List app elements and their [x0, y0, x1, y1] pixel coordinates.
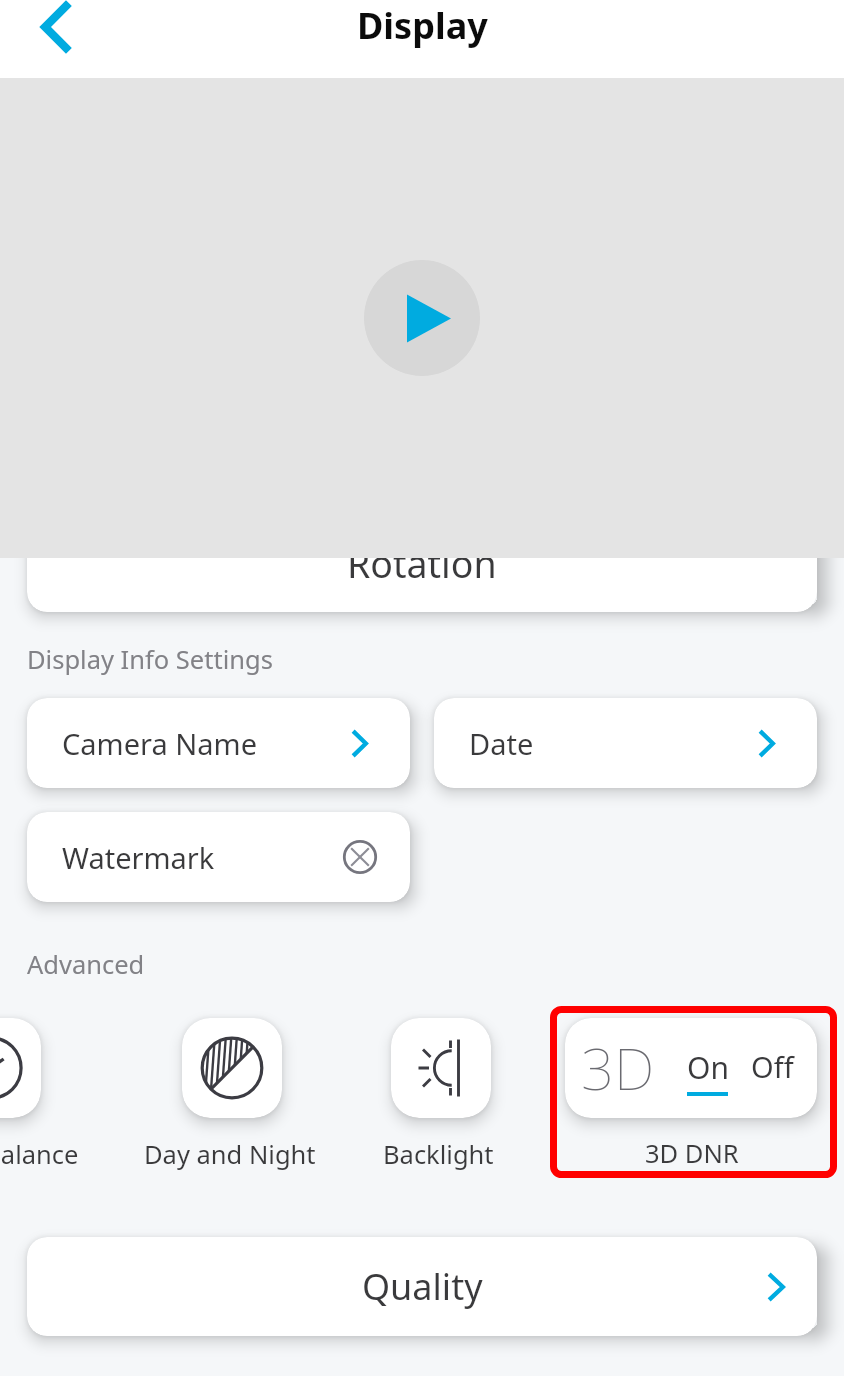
button[interactable]: Watermark [27, 812, 410, 902]
button[interactable]: Date [434, 698, 817, 788]
staticText: 3D [581, 1028, 655, 1107]
staticText: Rotation [347, 538, 497, 589]
button[interactable]: Off [741, 1038, 803, 1100]
staticText: Off [751, 1047, 794, 1086]
staticText: Camera Name [62, 724, 258, 763]
button[interactable]: Back [17, 0, 97, 66]
staticText: Backlight [383, 1137, 494, 1172]
staticText: Display Info Settings [27, 642, 273, 677]
button[interactable]: 3D [565, 1018, 817, 1118]
staticText: 3D DNR [645, 1136, 739, 1171]
button[interactable]: Play video [364, 260, 480, 376]
staticText: On [687, 1047, 729, 1088]
staticText: Display [357, 1, 488, 50]
button[interactable]: Rotation [27, 517, 817, 612]
staticText: White Balance [0, 1137, 79, 1172]
button[interactable]: Camera Name [27, 698, 410, 788]
staticText: Day and Night [144, 1137, 316, 1172]
staticText: Date [469, 724, 534, 763]
staticText: Quality [362, 1262, 483, 1311]
button[interactable]: White Balance [0, 1018, 41, 1118]
button[interactable]: Backlight [391, 1018, 491, 1118]
button[interactable]: Day and Night [182, 1018, 282, 1118]
staticText: Advanced [27, 947, 145, 982]
staticText: Watermark [62, 838, 215, 877]
button[interactable]: Quality [27, 1237, 817, 1336]
button[interactable]: On [677, 1038, 738, 1100]
